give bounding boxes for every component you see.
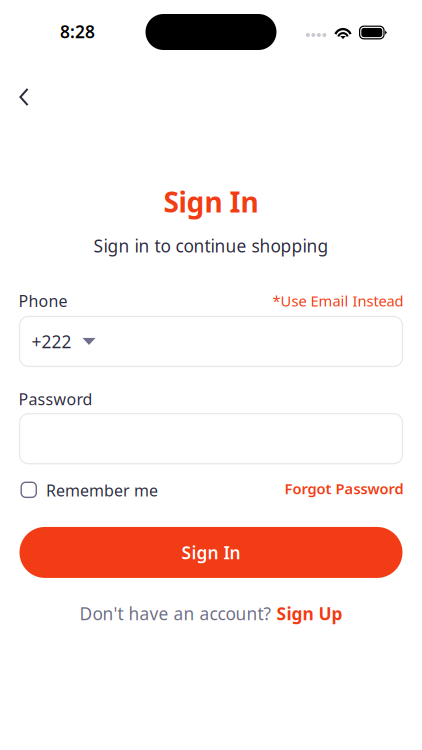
staticText: Sign In <box>181 541 240 564</box>
staticText: Sign Up <box>276 602 342 625</box>
button[interactable]: Sign In <box>19 527 402 578</box>
staticText: Don't have an account? <box>79 602 271 625</box>
button[interactable]: Remember me <box>18 479 158 501</box>
staticText: +222 <box>31 330 71 353</box>
staticText: Sign in to continue shopping <box>93 234 328 257</box>
button[interactable]: Forgot Password <box>284 479 403 498</box>
staticText: 8:28 <box>60 20 95 43</box>
button[interactable]: Sign Up <box>276 602 342 625</box>
staticText: Password <box>18 388 92 410</box>
staticText: Remember me <box>46 480 158 501</box>
staticText: Forgot Password <box>284 479 403 498</box>
staticText: Phone <box>18 290 67 311</box>
staticText: Sign In <box>163 183 258 220</box>
button[interactable]: Back <box>2 75 46 119</box>
button[interactable]: *Use Email Instead <box>272 291 403 311</box>
staticText: *Use Email Instead <box>272 291 403 311</box>
